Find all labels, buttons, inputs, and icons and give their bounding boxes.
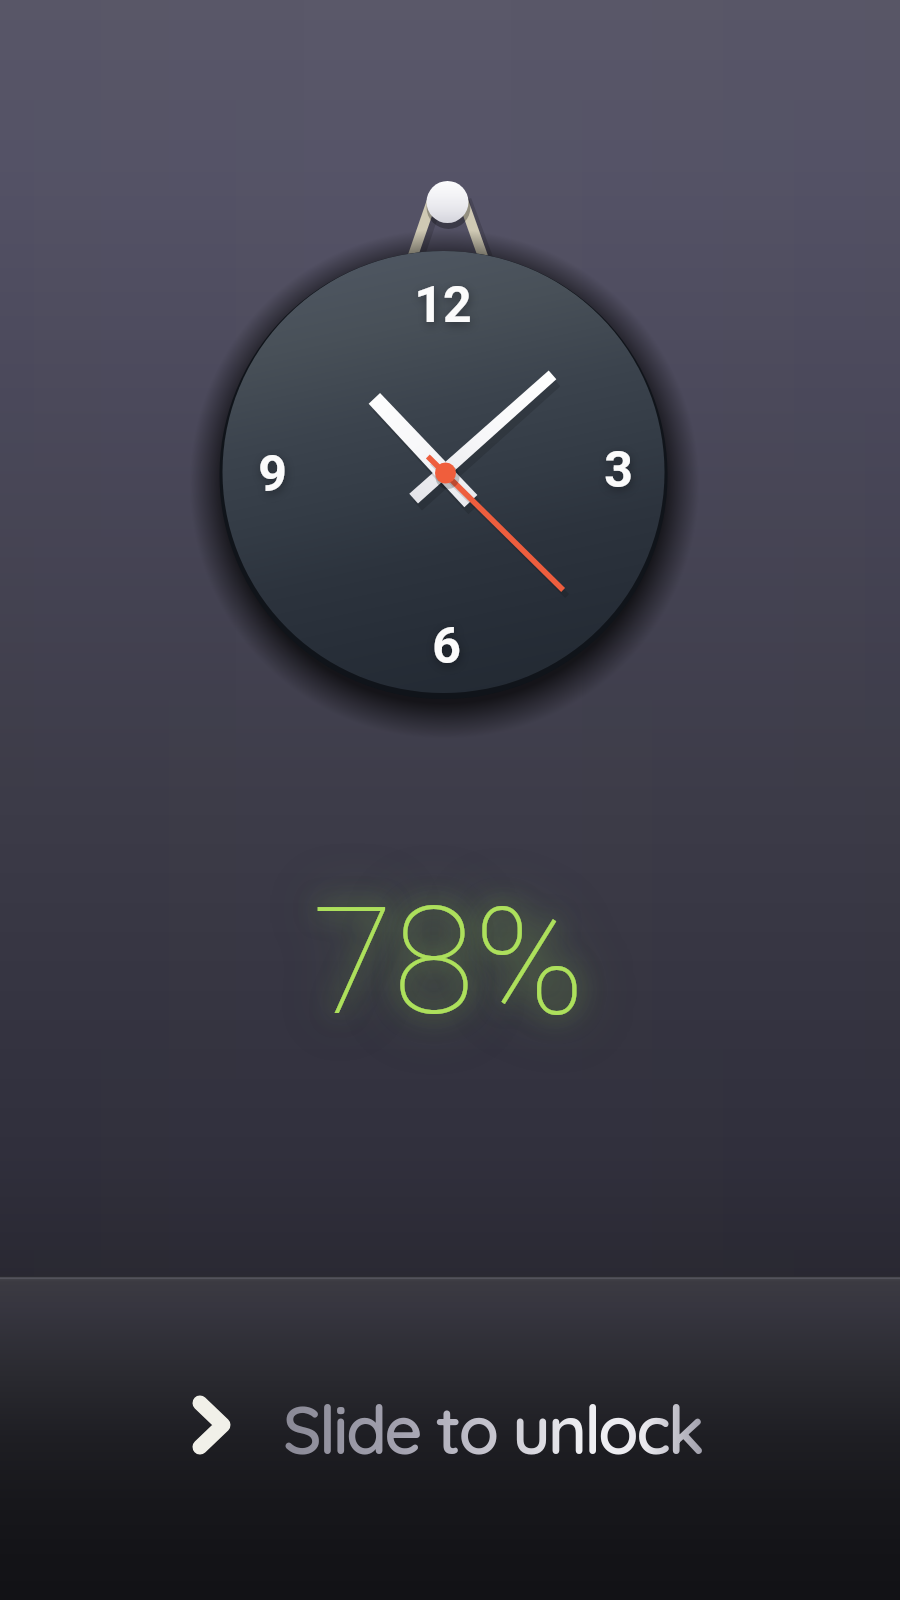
button[interactable]: Slide to unlock bbox=[0, 1276, 900, 1600]
staticText: 9 bbox=[258, 445, 287, 504]
other: Slide to unlock bbox=[183, 1390, 233, 1460]
staticText: 78% bbox=[312, 876, 585, 1049]
staticText: 78% bbox=[312, 876, 585, 1049]
staticText: 6 bbox=[432, 617, 461, 676]
staticText: 3 bbox=[604, 441, 633, 500]
staticText: 12 bbox=[414, 276, 472, 335]
staticText: Slide to unlock bbox=[283, 1388, 703, 1471]
